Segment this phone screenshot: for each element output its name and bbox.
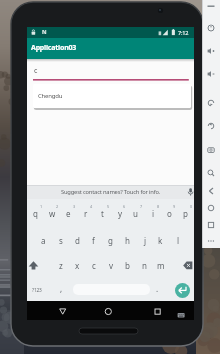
button[interactable] [27, 38, 194, 59]
button[interactable]: j [136, 228, 153, 252]
staticText: 7:12 [178, 29, 189, 37]
button[interactable] [33, 64, 189, 81]
staticText: v [109, 260, 113, 271]
button[interactable]: r [77, 201, 94, 225]
staticText: q [33, 208, 38, 219]
button[interactable]: t [94, 201, 111, 225]
staticText: 6 [123, 204, 125, 209]
button[interactable]: a [35, 228, 52, 252]
staticText: ?123 [32, 287, 42, 294]
button[interactable]: w [44, 201, 61, 225]
button[interactable]: l [169, 228, 186, 252]
button[interactable]: y [111, 201, 128, 225]
staticText: Suggest contact names? Touch for info. [61, 188, 161, 196]
staticText: t [101, 208, 104, 219]
staticText: b [125, 260, 130, 271]
button[interactable] [203, 18, 219, 238]
staticText: 9 [173, 204, 175, 209]
staticText: r [84, 208, 88, 219]
button[interactable]: o [161, 201, 178, 225]
staticText: a [41, 235, 46, 246]
staticText: i [152, 208, 154, 219]
button[interactable] [27, 185, 194, 199]
button[interactable]: m [152, 253, 169, 277]
staticText: c [34, 66, 38, 76]
staticText: u [133, 208, 138, 219]
button[interactable]: n [136, 253, 153, 277]
button[interactable]: i [144, 201, 161, 225]
button[interactable] [52, 302, 74, 320]
staticText: l [177, 235, 179, 246]
staticText: Chengdu [38, 92, 63, 100]
button[interactable]: z [52, 253, 69, 277]
button[interactable]: h [119, 228, 136, 252]
staticText: 4 [90, 204, 92, 209]
button[interactable]: q [27, 201, 44, 225]
button[interactable]: , [55, 278, 67, 298]
staticText: o [167, 208, 172, 219]
staticText: j [144, 235, 146, 246]
button[interactable]: ?123 [26, 279, 48, 301]
button[interactable]: d [69, 228, 86, 252]
staticText: c [92, 260, 96, 271]
staticText: g [108, 235, 113, 246]
button[interactable]: b [119, 253, 136, 277]
staticText: 3 [73, 204, 75, 209]
staticText: 0 [190, 204, 192, 209]
button[interactable]: p [177, 201, 194, 225]
staticText: w [49, 208, 56, 219]
staticText: Application03 [31, 43, 77, 53]
button[interactable] [97, 302, 119, 320]
button[interactable]: v [102, 253, 119, 277]
button[interactable]: k [152, 228, 169, 252]
button[interactable]: e [60, 201, 77, 225]
button[interactable]: x [69, 253, 86, 277]
staticText: N [42, 28, 47, 36]
button[interactable] [146, 302, 168, 320]
button[interactable]: g [102, 228, 119, 252]
staticText: z [59, 260, 63, 271]
staticText: k [158, 235, 163, 246]
staticText: s [59, 235, 63, 246]
staticText: 7 [140, 204, 142, 209]
staticText: p [183, 208, 188, 219]
button[interactable] [175, 283, 190, 298]
staticText: , [60, 283, 62, 294]
staticText: h [125, 235, 130, 246]
button[interactable]: u [127, 201, 144, 225]
staticText: 1 [40, 204, 42, 209]
staticText: f [92, 235, 95, 246]
staticText: x [75, 260, 80, 271]
staticText: d [75, 235, 80, 246]
button[interactable]: f [85, 228, 102, 252]
button[interactable]: Chengdu [38, 89, 88, 103]
button[interactable]: c [85, 253, 102, 277]
staticText: 2 [56, 204, 58, 209]
staticText: m [157, 260, 165, 271]
staticText: e [66, 208, 71, 219]
staticText: 8 [157, 204, 159, 209]
staticText: n [142, 260, 147, 271]
button[interactable]: . [151, 278, 163, 298]
button[interactable]: s [52, 228, 69, 252]
staticText: y [118, 208, 122, 219]
staticText: . [156, 283, 158, 294]
staticText: 5 [107, 204, 109, 209]
